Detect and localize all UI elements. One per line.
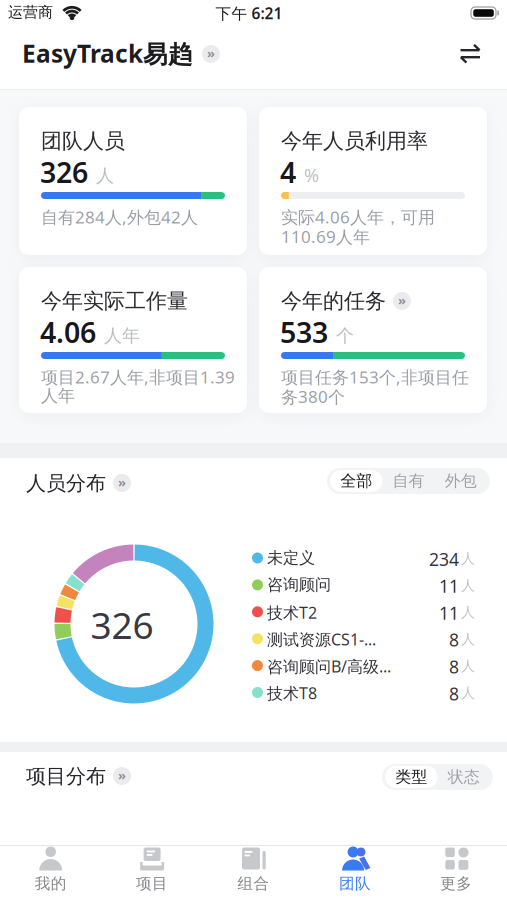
- staticText: 组合: [237, 874, 269, 893]
- staticText: 团队人员: [41, 128, 125, 154]
- button[interactable]: 类型: [385, 764, 437, 790]
- staticText: 人: [461, 550, 475, 567]
- staticText: 技术T2: [267, 602, 317, 623]
- staticText: 4: [280, 153, 296, 191]
- staticText: 未定义: [267, 548, 315, 568]
- staticText: 人年: [104, 325, 140, 347]
- staticText: 人: [461, 658, 475, 675]
- staticText: 人: [461, 631, 475, 648]
- button[interactable]: 全部: [330, 468, 382, 494]
- button[interactable]: 团队: [0, 0, 101, 55]
- button[interactable]: 切换排序: [452, 40, 488, 70]
- staticText: 咨询顾问: [267, 575, 331, 595]
- staticText: 我的: [35, 874, 67, 893]
- staticText: 人: [461, 684, 475, 702]
- staticText: 533: [280, 313, 328, 351]
- staticText: 人: [96, 165, 114, 187]
- staticText: 项目分布: [26, 764, 106, 789]
- staticText: EasyTrack易趋: [22, 37, 193, 70]
- button[interactable]: 展开人员分布: [113, 474, 131, 492]
- staticText: 项目: [136, 874, 168, 893]
- staticText: 11: [439, 601, 459, 624]
- staticText: 咨询顾问B/高级...: [267, 656, 391, 677]
- staticText: 团队: [339, 874, 371, 893]
- staticText: 自有284人,外包42人: [41, 207, 198, 227]
- button[interactable]: 查看今年的任务: [394, 293, 410, 309]
- button[interactable]: 更多: [0, 0, 101, 55]
- staticText: 今年实际工作量: [41, 288, 188, 314]
- staticText: 11: [439, 574, 459, 598]
- button[interactable]: 自有: [382, 468, 435, 494]
- staticText: »: [118, 766, 126, 784]
- staticText: 8: [449, 655, 459, 678]
- staticText: 今年的任务: [281, 288, 386, 314]
- staticText: 更多: [440, 874, 472, 893]
- staticText: 人员分布: [26, 471, 106, 496]
- staticText: 技术T8: [267, 682, 317, 704]
- staticText: 实际4.06人年，可用 110.69人年: [281, 207, 435, 246]
- button[interactable]: 外包: [435, 468, 487, 494]
- staticText: 326: [90, 600, 153, 649]
- staticText: 今年人员利用率: [281, 128, 428, 154]
- staticText: 状态: [448, 767, 480, 787]
- staticText: »: [118, 473, 126, 491]
- staticText: 4.06: [40, 313, 96, 351]
- button[interactable]: 状态: [437, 764, 490, 790]
- staticText: 外包: [445, 471, 477, 491]
- button[interactable]: 展开项目分布: [113, 767, 131, 785]
- staticText: 人: [461, 604, 475, 621]
- staticText: 326: [40, 153, 88, 191]
- staticText: 8: [449, 628, 459, 651]
- staticText: »: [207, 44, 215, 62]
- button[interactable]: 展开: [202, 45, 220, 63]
- staticText: 项目任务153个,非项目任 务380个: [281, 367, 469, 406]
- staticText: 类型: [395, 767, 427, 787]
- staticText: 项目2.67人年,非项目1.39 人年: [41, 367, 235, 405]
- staticText: %: [304, 163, 319, 187]
- staticText: 人: [461, 577, 475, 594]
- staticText: 234: [429, 547, 459, 571]
- staticText: 下午 6:21: [215, 3, 282, 24]
- staticText: 8: [449, 682, 459, 705]
- staticText: 个: [336, 325, 354, 347]
- button[interactable]: 我的: [0, 0, 101, 55]
- staticText: 全部: [340, 471, 372, 491]
- button[interactable]: 组合: [0, 0, 101, 55]
- staticText: 运营商: [8, 3, 53, 21]
- staticText: 测试资源CS1-...: [267, 629, 376, 650]
- staticText: »: [398, 291, 406, 309]
- button[interactable]: 项目: [0, 0, 101, 55]
- staticText: 自有: [392, 471, 424, 491]
